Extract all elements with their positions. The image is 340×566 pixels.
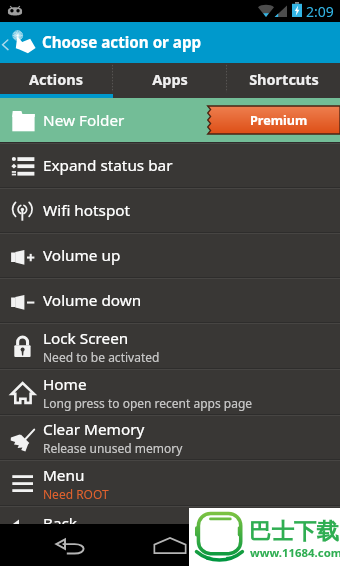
staticText: Lock Screen bbox=[43, 328, 129, 349]
button[interactable]: Home bbox=[0, 370, 340, 416]
staticText: Volume up bbox=[43, 245, 121, 266]
staticText: Volume down bbox=[43, 290, 142, 311]
staticText: Home bbox=[43, 374, 87, 395]
button[interactable]: Actions bbox=[0, 63, 112, 94]
staticText: 2:09 bbox=[306, 2, 334, 21]
staticText: 巴士下载 bbox=[249, 517, 339, 545]
staticText: Back bbox=[43, 513, 78, 534]
staticText: Premium bbox=[250, 112, 308, 129]
button[interactable]: Apps bbox=[113, 63, 226, 94]
button[interactable]: Clear Memory bbox=[0, 416, 340, 461]
staticText: Choose action or app bbox=[42, 32, 202, 53]
staticText: Menu bbox=[43, 465, 85, 486]
button[interactable]: Lock Screen bbox=[0, 324, 340, 370]
button[interactable]: Choose action or app bbox=[0, 22, 340, 63]
staticText: www.11684.com bbox=[250, 545, 340, 561]
staticText: Long press to open recent apps page bbox=[43, 395, 253, 411]
staticText: Need to be activated bbox=[43, 349, 160, 365]
staticText: New Folder bbox=[43, 110, 125, 131]
staticText: Need ROOT bbox=[43, 486, 109, 502]
staticText: Apps bbox=[152, 69, 188, 89]
button[interactable]: Wifi hotspot bbox=[0, 189, 340, 234]
button[interactable]: Home bbox=[147, 524, 193, 566]
button[interactable]: Premium bbox=[207, 106, 340, 134]
button[interactable]: Volume down bbox=[0, 279, 340, 324]
staticText: Release unused memory bbox=[43, 440, 183, 456]
button[interactable]: Shortcuts bbox=[227, 63, 340, 94]
staticText: Actions bbox=[29, 69, 83, 89]
button[interactable]: Expand status bar bbox=[0, 144, 340, 189]
button[interactable]: Volume up bbox=[0, 234, 340, 279]
staticText: Wifi hotspot bbox=[43, 200, 131, 221]
button[interactable]: Back bbox=[0, 507, 340, 552]
staticText: Clear Memory bbox=[43, 419, 145, 440]
button[interactable]: Menu bbox=[0, 461, 340, 507]
staticText: Shortcuts bbox=[249, 69, 319, 89]
button[interactable]: New Folder bbox=[0, 98, 340, 142]
button[interactable]: Back bbox=[48, 524, 94, 566]
staticText: Expand status bar bbox=[43, 155, 173, 176]
